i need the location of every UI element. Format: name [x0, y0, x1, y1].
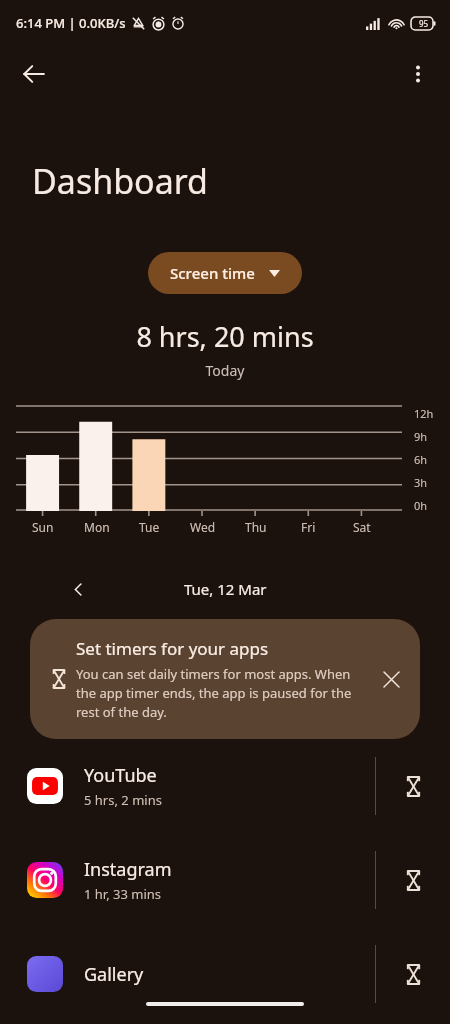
button[interactable]: Set timer for Instagram [376, 851, 450, 909]
staticText: YouTube [84, 763, 157, 788]
button[interactable]: Set timers for your apps [30, 619, 420, 739]
staticText: Screen time [170, 263, 255, 283]
staticText: Dashboard [32, 158, 209, 204]
button[interactable]: Back [12, 52, 56, 96]
staticText: 1 hr, 33 mins [84, 885, 162, 903]
staticText: 12h [414, 406, 434, 419]
staticText: 6h [414, 452, 428, 465]
button[interactable]: Set timer for Gallery [376, 945, 450, 1003]
staticText: Sat [353, 519, 371, 535]
staticText: Wed [190, 519, 216, 535]
staticText: You can set daily timers for most apps. … [76, 665, 372, 721]
staticText: Sun [32, 519, 54, 535]
staticText: Tue, 12 Mar [184, 579, 267, 599]
button[interactable]: YouTube [0, 757, 450, 815]
staticText: Set timers for your apps [76, 637, 269, 660]
button[interactable]: Set timer for YouTube [376, 757, 450, 815]
staticText: Thu [245, 519, 267, 535]
staticText: 0h [414, 498, 428, 511]
staticText: 95 [419, 18, 429, 29]
staticText: Instagram [84, 857, 172, 882]
button[interactable]: Gallery [0, 945, 450, 1003]
staticText: 8 hrs, 20 mins [0, 318, 450, 355]
staticText: Today [0, 361, 450, 380]
staticText: Tue [139, 519, 160, 535]
staticText: Mon [84, 519, 110, 535]
button[interactable]: More options [396, 52, 440, 96]
staticText: 9h [414, 429, 428, 442]
button[interactable]: Previous day [62, 575, 94, 603]
staticText: 3h [414, 475, 428, 488]
button[interactable]: Screen time [148, 252, 302, 294]
staticText: 5 hrs, 2 mins [84, 791, 162, 809]
staticText: 6:14 PM | 0.0KB/s [16, 14, 126, 32]
staticText: Fri [301, 519, 316, 535]
button[interactable]: Instagram [0, 851, 450, 909]
staticText: Gallery [84, 962, 144, 987]
button[interactable]: Dismiss [372, 660, 410, 698]
